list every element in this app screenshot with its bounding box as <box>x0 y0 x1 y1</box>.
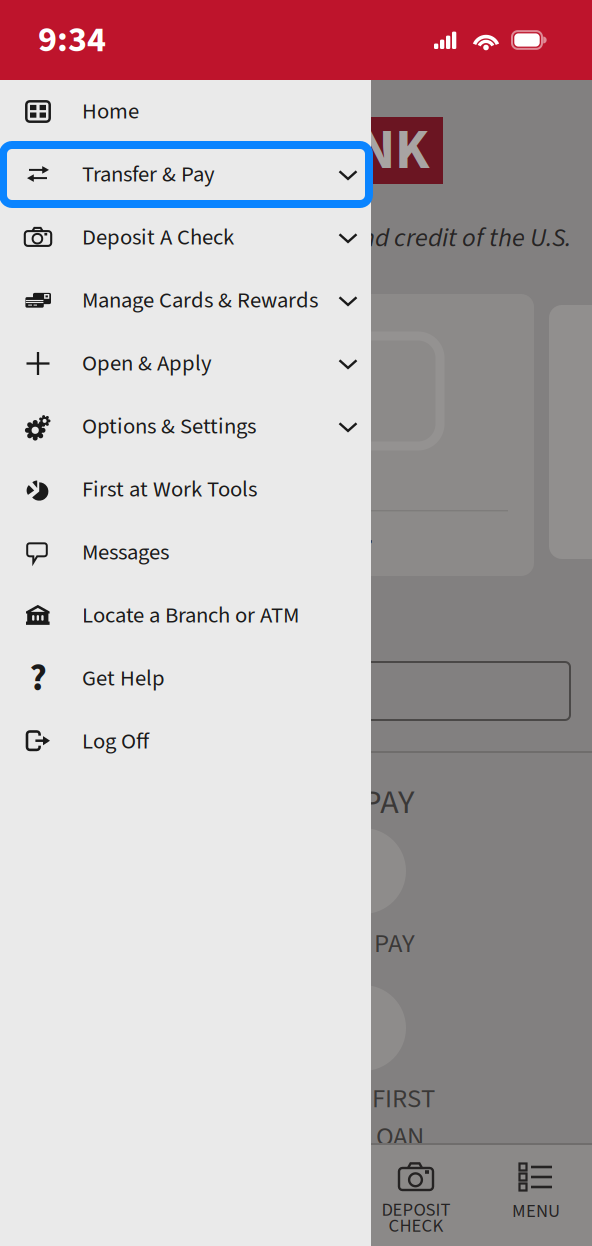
staticText: Manage Cards & Rewards <box>82 284 318 317</box>
staticText: Transfer & Pay <box>82 158 215 191</box>
staticText: ith and credit of the U.S. <box>313 219 571 257</box>
button[interactable]: Home <box>0 80 371 143</box>
button[interactable]: DEPOSIT <box>356 1145 476 1246</box>
staticText: ? <box>29 652 46 705</box>
staticText: NK <box>358 111 429 190</box>
button[interactable]: Transfer & Pay <box>0 143 371 206</box>
staticText: Home <box>82 95 139 128</box>
staticText: Messages <box>82 536 169 569</box>
button[interactable]: First at Work Tools <box>0 458 371 521</box>
staticText: R FIRST <box>352 1080 435 1118</box>
staticText: Log Off <box>82 725 149 758</box>
staticText: Locate a Branch or ATM <box>82 599 299 632</box>
staticText: MENU <box>512 1198 560 1225</box>
staticText: Open & Apply <box>82 347 212 380</box>
button[interactable]: ? <box>0 647 371 710</box>
staticText: 9:34 <box>38 14 106 66</box>
button[interactable]: Locate a Branch or ATM <box>0 584 371 647</box>
button[interactable]: Log Off <box>0 710 371 773</box>
button[interactable]: Manage Cards & Rewards <box>0 269 371 332</box>
staticText: PAY <box>362 778 415 827</box>
staticText: Deposit A Check <box>82 221 234 254</box>
button[interactable]: Deposit A Check <box>0 206 371 269</box>
button[interactable]: Options & Settings <box>0 395 371 458</box>
staticText: PAY <box>374 925 415 963</box>
staticText: Options & Settings <box>82 410 256 443</box>
button[interactable]: MENU <box>476 1145 592 1246</box>
button[interactable]: Open & Apply <box>0 332 371 395</box>
staticText: Get Help <box>82 662 165 695</box>
staticText: First at Work Tools <box>82 473 257 506</box>
staticText: DEPOSIT <box>381 1197 450 1223</box>
staticText: ansfer <box>300 527 372 565</box>
button[interactable]: Messages <box>0 521 371 584</box>
staticText: CHECK <box>388 1213 443 1239</box>
staticText: LOAN <box>364 1118 424 1156</box>
